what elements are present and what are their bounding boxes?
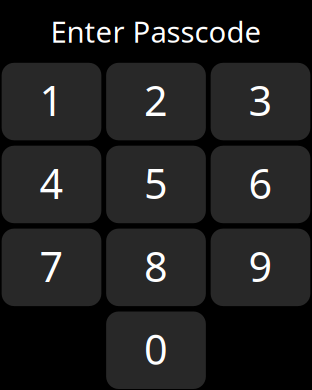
staticText: 7 — [39, 238, 63, 293]
button[interactable]: 3 — [211, 63, 310, 140]
button[interactable]: 2 — [106, 63, 206, 140]
button[interactable]: 5 — [106, 146, 206, 223]
button[interactable]: 0 — [106, 311, 206, 389]
staticText: 0 — [144, 321, 168, 376]
staticText: 3 — [248, 73, 272, 127]
staticText: 9 — [248, 238, 272, 293]
button[interactable]: 4 — [2, 146, 101, 223]
staticText: 5 — [144, 155, 168, 210]
staticText: 6 — [248, 155, 272, 210]
button[interactable]: 8 — [106, 229, 206, 306]
staticText: 1 — [39, 73, 63, 127]
staticText: Enter Passcode — [50, 12, 261, 51]
button[interactable]: 7 — [2, 229, 101, 306]
staticText: 8 — [144, 238, 168, 293]
staticText: 2 — [144, 73, 168, 127]
button[interactable]: 9 — [211, 229, 310, 306]
button[interactable]: 1 — [2, 63, 101, 140]
staticText: 4 — [39, 155, 63, 210]
button[interactable]: 6 — [211, 146, 310, 223]
